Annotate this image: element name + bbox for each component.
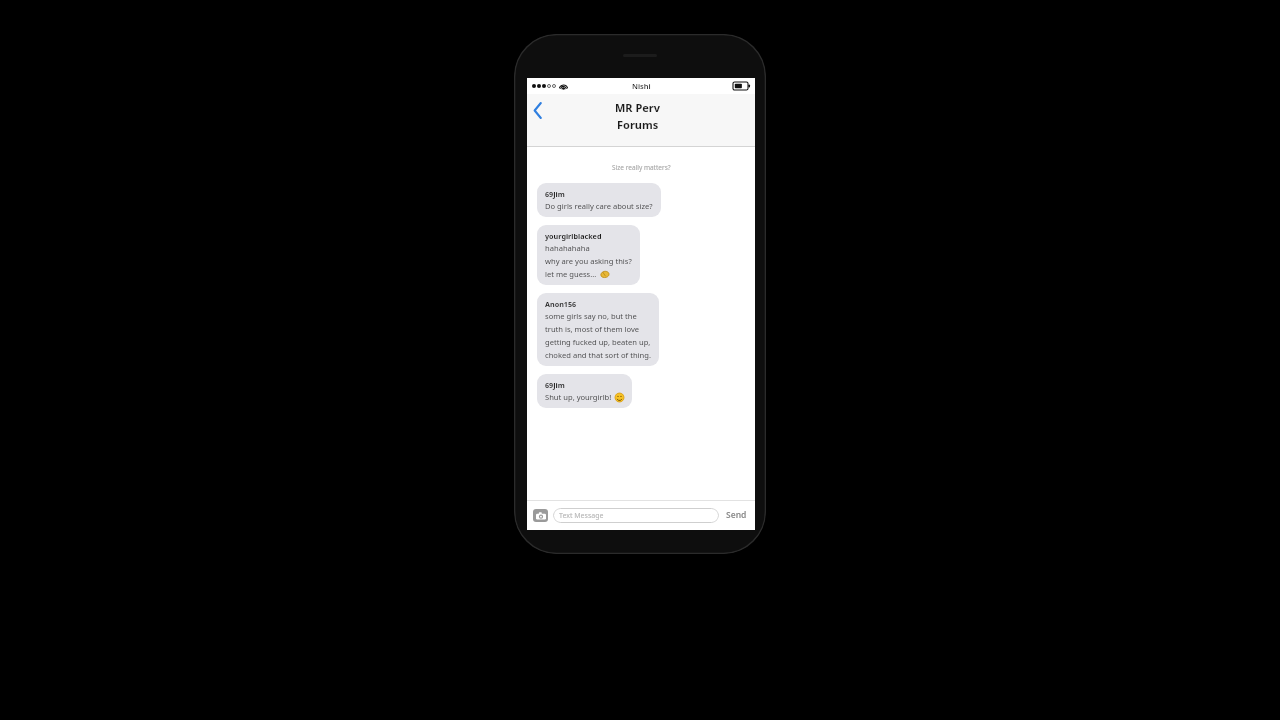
staticText: choked and that sort of thing. — [545, 350, 651, 360]
staticText: Shut up, yourgirlb! — [545, 392, 612, 402]
staticText: Nishi — [632, 81, 651, 91]
staticText: 69Jim — [545, 189, 565, 199]
staticText: Anon156 — [545, 299, 577, 309]
button[interactable]: Send — [724, 507, 749, 523]
button[interactable]: Text Message — [553, 508, 719, 523]
button[interactable]: Back — [528, 100, 548, 120]
staticText: Send — [726, 509, 747, 521]
button[interactable]: yourgirlblacked — [537, 225, 640, 285]
button[interactable]: 69Jim — [537, 374, 632, 408]
staticText: yourgirlblacked — [545, 231, 602, 241]
staticText: 69Jim — [545, 380, 565, 390]
staticText: Forums — [617, 117, 659, 132]
button[interactable]: 69Jim — [537, 183, 661, 217]
staticText: let me guess… — [545, 269, 597, 279]
button[interactable]: Camera — [533, 509, 548, 522]
staticText: MR Perv — [615, 100, 661, 115]
staticText: hahahahaha — [545, 243, 590, 253]
staticText: why are you asking this? — [545, 256, 632, 266]
staticText: Do girls really care about size? — [545, 201, 653, 211]
staticText: truth is, most of them love — [545, 324, 640, 334]
staticText: some girls say no, but the — [545, 311, 637, 321]
staticText: Size really matters? — [612, 163, 671, 172]
staticText: Text Message — [559, 511, 604, 521]
button[interactable]: Anon156 — [537, 293, 659, 366]
staticText: getting fucked up, beaten up, — [545, 337, 651, 347]
